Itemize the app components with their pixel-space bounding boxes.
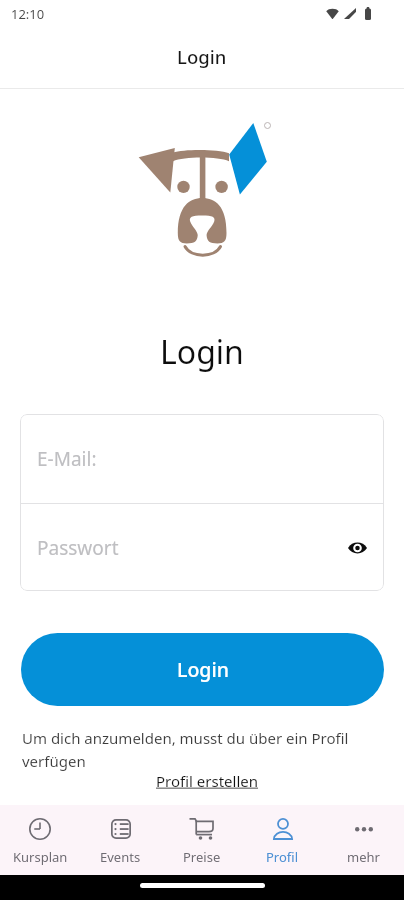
staticText: Login	[177, 44, 227, 69]
button[interactable]: Profil erstellen	[156, 771, 259, 791]
staticText: Profil	[266, 848, 299, 866]
staticText: Events	[100, 848, 141, 866]
staticText: mehr	[347, 848, 380, 866]
staticText: Login	[177, 656, 229, 683]
staticText: Kursplan	[13, 848, 68, 866]
button[interactable]: Login	[21, 633, 384, 706]
button[interactable]: Kursplan	[0, 805, 80, 875]
staticText: E-Mail:	[37, 446, 97, 472]
button[interactable]: mehr	[323, 805, 404, 875]
button[interactable]: Passwort	[20, 504, 384, 591]
staticText: Um dich anzumelden, musst du über ein Pr…	[22, 728, 372, 772]
button[interactable]: Passwort anzeigen	[341, 532, 373, 564]
staticText: Preise	[183, 848, 221, 866]
staticText: 12:10	[11, 5, 45, 23]
button[interactable]: Events	[80, 805, 161, 875]
staticText: Passwort	[37, 535, 119, 561]
staticText: Profil erstellen	[156, 771, 259, 791]
button[interactable]: Preise	[161, 805, 242, 875]
staticText: Login	[160, 330, 244, 374]
button[interactable]: E-Mail:	[20, 414, 384, 503]
button[interactable]: Profil	[242, 805, 323, 875]
